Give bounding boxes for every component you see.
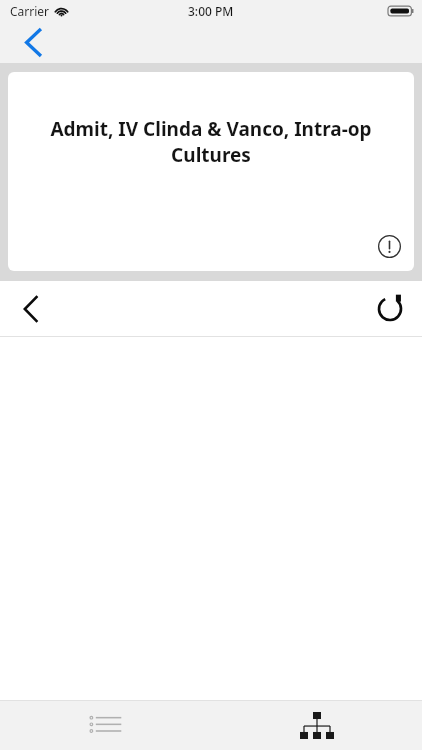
- staticText: 3:00 PM: [188, 3, 234, 19]
- button[interactable]: Refresh: [366, 285, 414, 333]
- button[interactable]: Back: [12, 22, 54, 63]
- staticText: Carrier: [10, 3, 50, 19]
- button[interactable]: Tree view: [211, 701, 422, 750]
- button[interactable]: Admit, IV Clinda & Vanco, Intra-op Cultu…: [8, 72, 414, 271]
- button[interactable]: Back: [6, 285, 54, 333]
- button[interactable]: List view: [0, 701, 211, 750]
- staticText: Admit, IV Clinda & Vanco, Intra-op Cultu…: [44, 116, 378, 168]
- button[interactable]: Info: [376, 233, 402, 259]
